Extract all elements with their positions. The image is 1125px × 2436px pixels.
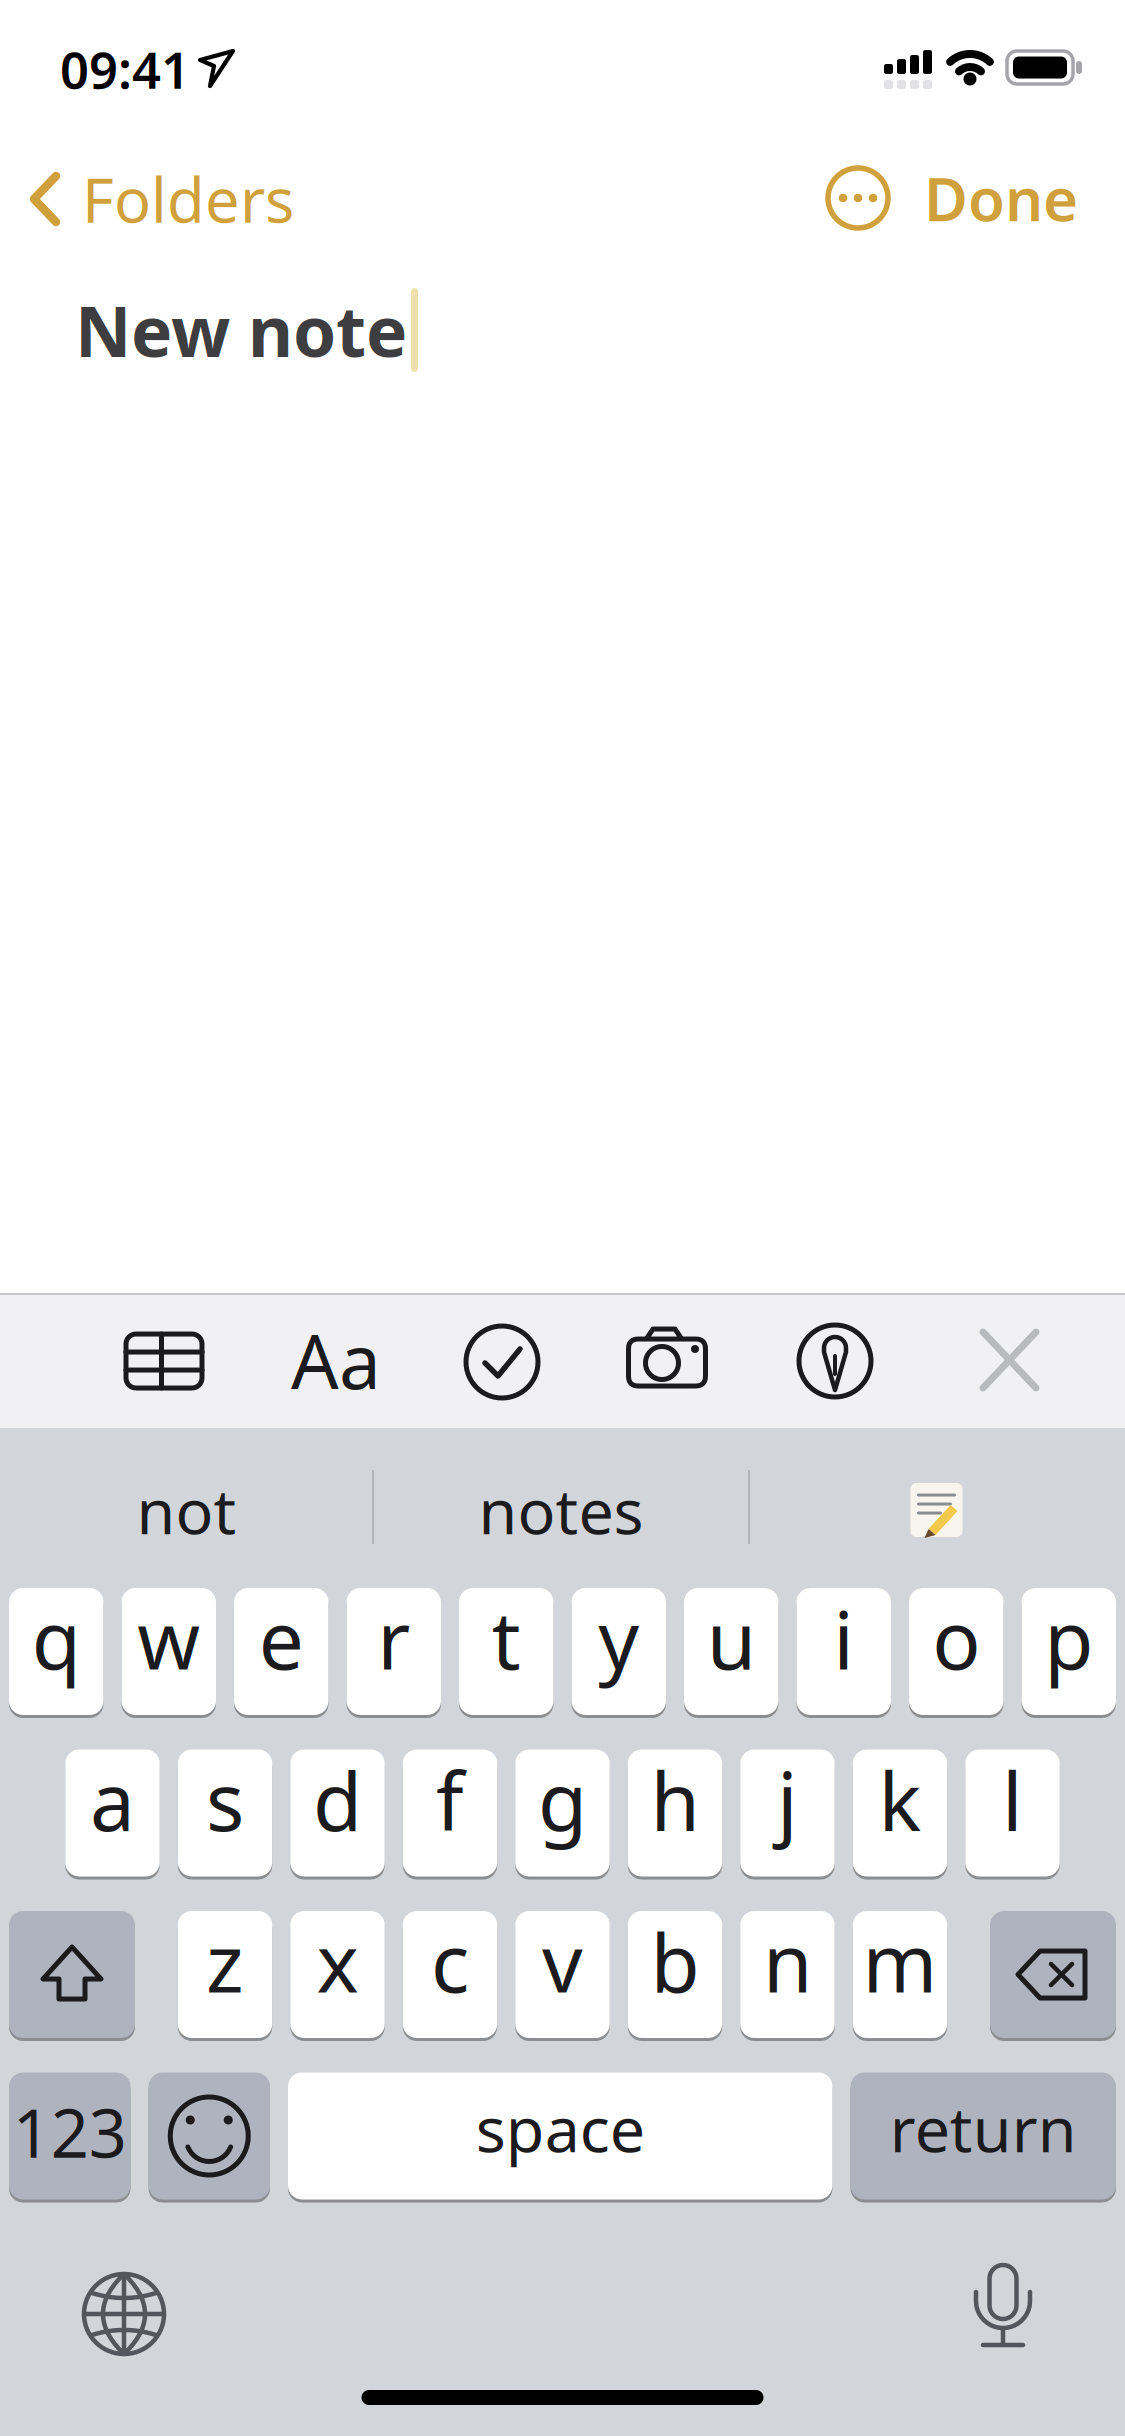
button[interactable]: space <box>288 2070 832 2201</box>
button[interactable]: 123 <box>9 2070 130 2201</box>
staticText: m <box>862 1908 937 2015</box>
button[interactable]: z <box>178 1909 272 2040</box>
staticText: r <box>377 1585 410 1692</box>
staticText: 09:41 <box>60 35 190 103</box>
staticText: f <box>436 1747 464 1853</box>
button[interactable]: c <box>403 1909 497 2040</box>
staticText: v <box>542 1908 583 2015</box>
button[interactable]: Aa <box>266 1315 406 1405</box>
button[interactable]: b <box>628 1909 722 2040</box>
staticText: return <box>890 2086 1077 2170</box>
button[interactable]: t <box>459 1586 553 1717</box>
button[interactable]: Done <box>858 166 1078 230</box>
button[interactable]: n <box>740 1909 835 2040</box>
button[interactable]: h <box>628 1747 722 1878</box>
staticText: k <box>878 1747 921 1853</box>
button[interactable]: s <box>178 1747 272 1878</box>
button[interactable]: w <box>121 1586 216 1717</box>
button[interactable]: e <box>234 1586 328 1717</box>
staticText: u <box>707 1585 756 1692</box>
staticText: notes <box>478 1468 643 1552</box>
staticText: New note <box>75 284 407 376</box>
staticText: Folders <box>82 158 294 240</box>
button[interactable] <box>990 1909 1116 2040</box>
staticText: space <box>476 2086 645 2170</box>
button[interactable]: notes <box>381 1445 741 1575</box>
staticText: a <box>90 1747 135 1853</box>
button[interactable]: k <box>853 1747 947 1878</box>
staticText: s <box>206 1747 244 1853</box>
button[interactable] <box>79 2269 169 2359</box>
button[interactable]: i <box>796 1586 891 1717</box>
button[interactable] <box>119 1316 209 1406</box>
staticText: q <box>32 1585 81 1692</box>
staticText: e <box>259 1585 304 1692</box>
button[interactable]: p <box>1021 1586 1116 1717</box>
button[interactable]: v <box>515 1909 610 2040</box>
button[interactable] <box>9 1909 135 2040</box>
button[interactable]: m <box>853 1909 947 2040</box>
staticText: g <box>538 1747 587 1853</box>
staticText: d <box>313 1747 362 1853</box>
staticText: x <box>316 1908 358 2015</box>
button[interactable]: d <box>290 1747 385 1878</box>
staticText: y <box>598 1585 639 1692</box>
staticText: o <box>932 1585 980 1692</box>
button[interactable]: not <box>6 1445 366 1575</box>
button[interactable] <box>822 162 894 234</box>
button[interactable]: u <box>684 1586 778 1717</box>
staticText: i <box>833 1585 854 1692</box>
staticText: h <box>650 1747 699 1853</box>
button[interactable]: return <box>850 2070 1116 2201</box>
button[interactable]: a <box>65 1747 160 1878</box>
button[interactable]: Folders <box>30 167 370 231</box>
staticText: p <box>1044 1585 1093 1692</box>
staticText: l <box>1002 1747 1023 1853</box>
staticText: not <box>136 1468 236 1552</box>
staticText: n <box>763 1908 812 2015</box>
staticText: j <box>777 1747 798 1853</box>
staticText: z <box>206 1908 244 2015</box>
button[interactable] <box>964 1315 1054 1405</box>
button[interactable]: j <box>740 1747 835 1878</box>
staticText: w <box>137 1585 200 1692</box>
button[interactable] <box>756 1445 1116 1575</box>
button[interactable]: f <box>403 1747 497 1878</box>
button[interactable]: r <box>346 1586 441 1717</box>
staticText: Aa <box>291 1310 381 1410</box>
staticText: c <box>431 1908 469 2015</box>
button[interactable] <box>958 2250 1048 2360</box>
button[interactable] <box>148 2070 270 2201</box>
button[interactable]: g <box>515 1747 610 1878</box>
button[interactable] <box>617 1317 717 1407</box>
button[interactable]: l <box>965 1747 1060 1878</box>
button[interactable]: q <box>9 1586 103 1717</box>
button[interactable] <box>790 1316 880 1406</box>
button[interactable]: x <box>290 1909 385 2040</box>
staticText: Done <box>924 158 1078 238</box>
button[interactable]: o <box>909 1586 1003 1717</box>
staticText: 123 <box>13 2088 127 2176</box>
button[interactable] <box>457 1317 547 1407</box>
staticText: t <box>492 1585 521 1692</box>
button[interactable]: y <box>571 1586 666 1717</box>
staticText: b <box>650 1908 699 2015</box>
